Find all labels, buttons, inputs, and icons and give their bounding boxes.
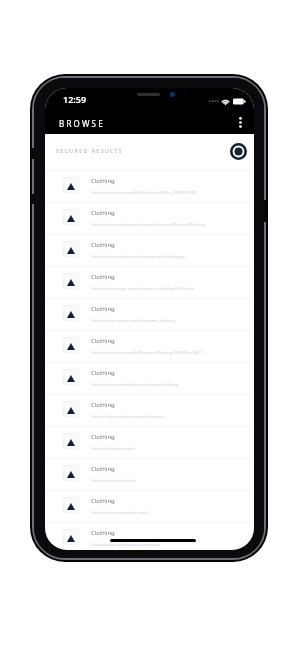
button[interactable]: Clothing xyxy=(45,395,254,427)
button[interactable]: Clothing xyxy=(45,171,254,203)
button[interactable]: Clothing xyxy=(45,523,254,550)
staticText: Clothing xyxy=(91,305,115,313)
staticText: Clothing xyxy=(91,273,115,281)
button[interactable]: Clothing xyxy=(45,491,254,523)
staticText: 12:59 xyxy=(63,93,87,105)
button[interactable]: Secure results xyxy=(228,141,249,162)
button[interactable]: Clothing xyxy=(45,331,254,363)
staticText: https://www.spreadshirt.com/custom/cloth… xyxy=(91,382,254,387)
staticText: https://shop.nordstrom.com/c/women xyxy=(91,414,254,419)
staticText: https://www.ebay.com/b/50-Ladies-HL8/bn_… xyxy=(91,190,254,195)
button[interactable]: Clothing xyxy=(45,203,254,235)
button[interactable]: Clothing xyxy=(45,235,254,267)
staticText: Clothing xyxy=(91,337,115,345)
staticText: Clothing xyxy=(91,369,115,377)
staticText: https://www.ebay.com/b/Womens-Clothing/1… xyxy=(91,350,254,355)
staticText: https://www.vannydress.com/ xyxy=(91,510,254,515)
staticText: Clothing xyxy=(91,465,115,473)
staticText: https://us.boohoo.com/ xyxy=(91,446,254,451)
button[interactable]: Clothing xyxy=(45,267,254,299)
staticText: https://www.target.com/c/women-s-clothin… xyxy=(91,286,254,291)
button[interactable]: Clothing xyxy=(45,363,254,395)
staticText: SECURED RESULTS xyxy=(56,147,123,154)
staticText: Clothing xyxy=(91,529,115,537)
button[interactable]: More options xyxy=(229,111,251,133)
staticText: Clothing xyxy=(91,241,115,249)
staticText: https://www.nordstromrack.com/clearance/… xyxy=(91,222,254,227)
button[interactable]: Clothing xyxy=(45,459,254,491)
staticText: Clothing xyxy=(91,401,115,409)
staticText: Clothing xyxy=(91,209,115,217)
staticText: https://www.kohls.com/ xyxy=(91,478,254,483)
button[interactable]: Clothing xyxy=(45,427,254,459)
staticText: BROWSE xyxy=(59,118,105,129)
staticText: https://www.clothingstore.com/shop xyxy=(91,542,254,547)
staticText: Clothing xyxy=(91,497,115,505)
button[interactable]: Clothing xyxy=(45,299,254,331)
staticText: https://www.academy.com/categories/cloth… xyxy=(91,254,254,259)
staticText: Clothing xyxy=(91,433,115,441)
staticText: Clothing xyxy=(91,177,115,185)
staticText: https://www.zappos.com/c/womens-clothing xyxy=(91,318,254,323)
